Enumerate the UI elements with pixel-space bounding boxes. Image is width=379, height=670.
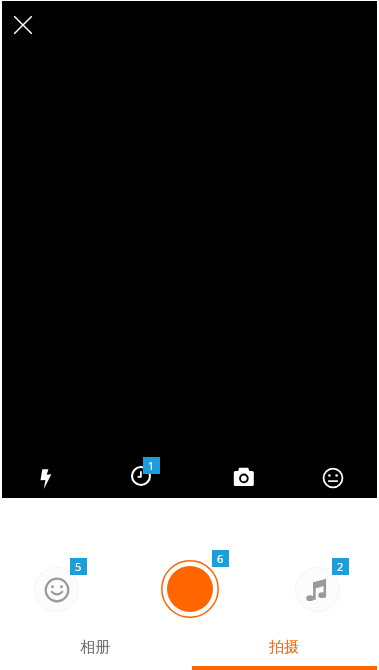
button[interactable]: Flash: [26, 459, 66, 499]
button[interactable]: 相册: [0, 628, 189, 670]
button[interactable]: Close: [8, 10, 37, 39]
staticText: 2: [337, 559, 344, 574]
staticText: 5: [75, 559, 82, 574]
button[interactable]: 拍摄: [189, 628, 379, 670]
button[interactable]: Switch camera: [224, 457, 264, 497]
button[interactable]: Music: [295, 567, 340, 612]
button[interactable]: Record: [161, 560, 219, 618]
staticText: 6: [217, 551, 224, 566]
button[interactable]: Stickers: [34, 567, 79, 612]
button[interactable]: Filter: [313, 458, 353, 498]
staticText: 拍摄: [269, 638, 299, 657]
staticText: 相册: [80, 638, 110, 657]
button[interactable]: Timer: [121, 456, 161, 496]
staticText: 1: [148, 458, 155, 473]
